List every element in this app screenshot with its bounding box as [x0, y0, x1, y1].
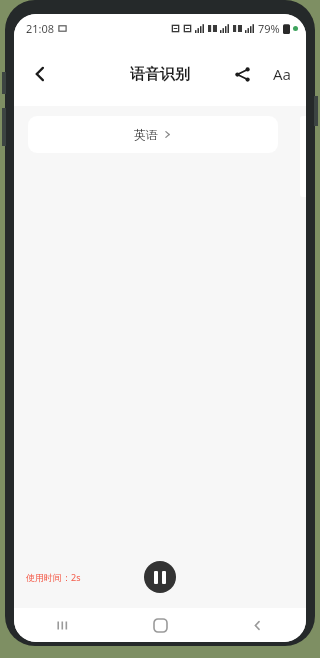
button[interactable]: Back — [209, 608, 306, 642]
button[interactable]: Home — [112, 608, 209, 642]
staticText: 使用时间：2s — [26, 571, 81, 583]
staticText: 英语 — [134, 127, 158, 142]
button[interactable]: Text size — [262, 54, 302, 94]
staticText: 语音识别 — [130, 65, 190, 84]
staticText: 79% — [258, 21, 280, 36]
button[interactable]: Recents — [14, 608, 112, 642]
staticText: 21:08 — [26, 21, 55, 36]
button[interactable]: Back — [18, 52, 62, 96]
button[interactable]: Share — [222, 54, 262, 94]
button[interactable]: 英语 — [28, 116, 278, 153]
button[interactable]: Pause — [144, 561, 176, 593]
staticText: Aa — [273, 64, 292, 84]
